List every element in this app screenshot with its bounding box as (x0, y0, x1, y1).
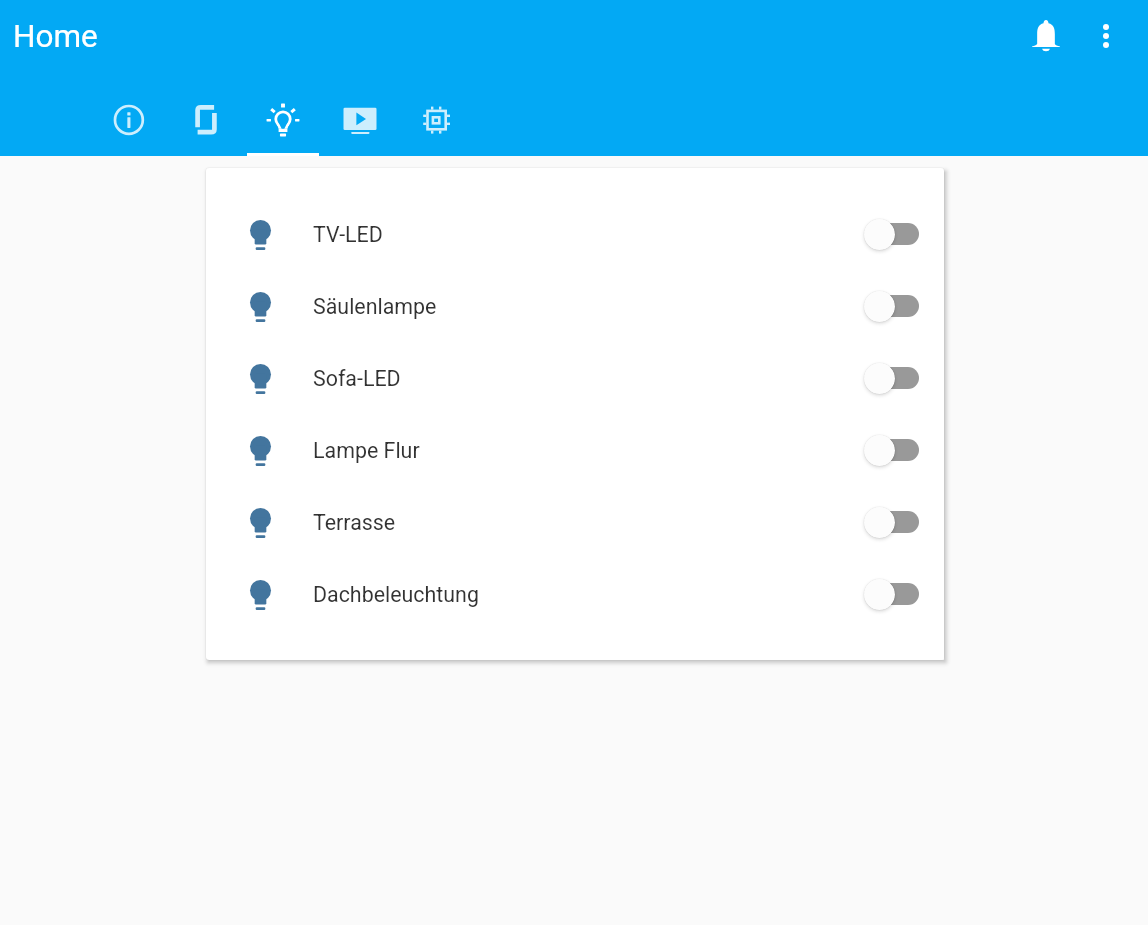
staticText: Home (13, 18, 98, 55)
button[interactable]: Lights (244, 72, 321, 156)
button[interactable]: Sofa-LED (206, 342, 944, 414)
staticText: Sofa-LED (313, 366, 401, 391)
button[interactable]: Toggle TV-LED (864, 213, 919, 255)
staticText: TV-LED (313, 222, 383, 247)
button[interactable]: Dachbeleuchtung (206, 558, 944, 630)
button[interactable]: More options (1078, 8, 1134, 64)
button[interactable]: Toggle Terrasse (864, 501, 919, 543)
staticText: Dachbeleuchtung (313, 582, 479, 607)
button[interactable]: Toggle Lampe Flur (864, 429, 919, 471)
button[interactable]: System (398, 72, 475, 156)
staticText: Lampe Flur (313, 438, 420, 463)
button[interactable]: Toggle Dachbeleuchtung (864, 573, 919, 615)
button[interactable]: Lampe Flur (206, 414, 944, 486)
button[interactable]: Toggle Sofa-LED (864, 357, 919, 399)
button[interactable]: Media (321, 72, 398, 156)
button[interactable]: Information (90, 72, 167, 156)
button[interactable]: Säulenlampe (206, 270, 944, 342)
button[interactable]: Terrasse (206, 486, 944, 558)
button[interactable]: Devices (167, 72, 244, 156)
staticText: Säulenlampe (313, 294, 437, 319)
button[interactable]: TV-LED (206, 198, 944, 270)
button[interactable]: Notifications (1018, 8, 1074, 64)
staticText: Terrasse (313, 510, 396, 535)
button[interactable]: Toggle Säulenlampe (864, 285, 919, 327)
